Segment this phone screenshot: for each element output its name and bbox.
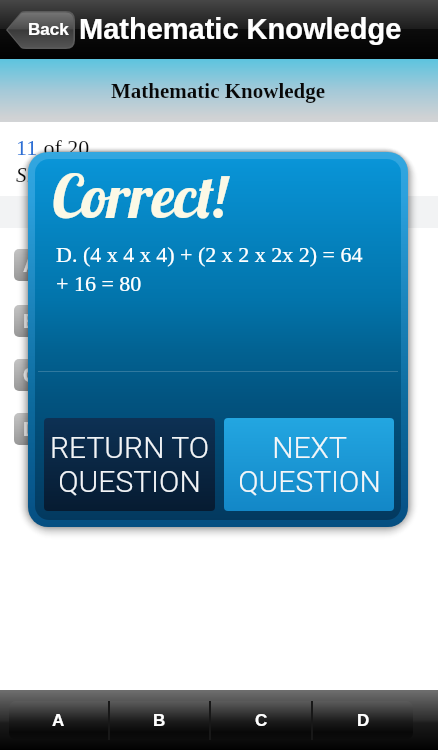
button[interactable]: C	[211, 701, 311, 740]
staticText: of 20	[38, 135, 90, 159]
staticText: D	[23, 418, 38, 440]
button[interactable]: NEXT QUESTION	[224, 418, 394, 511]
staticText: A	[23, 254, 38, 276]
button[interactable]: B	[0, 293, 438, 349]
staticText: Correct!	[51, 159, 229, 233]
staticText: C	[23, 364, 38, 386]
staticText: Mathematic Knowledge	[79, 13, 402, 45]
button[interactable]: Back	[6, 11, 75, 49]
staticText: Simplify: (4 x 4 x 4)	[16, 163, 183, 186]
staticText: B	[23, 310, 38, 332]
staticText: NEXT QUESTION	[238, 430, 381, 499]
button[interactable]: C	[0, 349, 438, 401]
staticText: Mathematic Knowledge	[111, 79, 326, 102]
staticText: A	[52, 711, 65, 730]
button[interactable]: RETURN TO QUESTION	[44, 418, 215, 511]
button[interactable]: D	[0, 401, 438, 457]
button[interactable]: D	[313, 701, 413, 740]
staticText: D	[357, 711, 370, 730]
staticText: C	[255, 711, 268, 730]
staticText: RETURN TO QUESTION	[50, 430, 209, 499]
staticText: D. (4 x 4 x 4) + (2 x 2 x 2x 2) = 64 + 1…	[56, 242, 363, 296]
staticText: B	[153, 711, 166, 730]
button[interactable]: A	[0, 237, 438, 293]
button[interactable]: B	[110, 701, 209, 740]
staticText: Back	[28, 20, 69, 39]
staticText: 11	[16, 135, 38, 159]
button[interactable]: A	[9, 701, 108, 740]
